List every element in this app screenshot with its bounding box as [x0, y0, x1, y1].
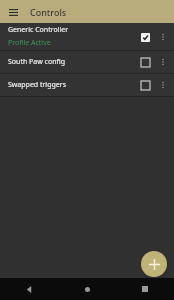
button[interactable]: Add profile	[141, 251, 167, 277]
button[interactable]: Disabled	[136, 76, 154, 94]
button[interactable]: More options	[156, 78, 170, 92]
button[interactable]: More options	[156, 30, 170, 44]
button[interactable]: Open navigation menu	[5, 4, 21, 20]
button[interactable]: Enabled	[136, 28, 154, 46]
button[interactable]: Home	[58, 278, 116, 300]
button[interactable]: Recent apps	[116, 278, 174, 300]
button[interactable]: More options	[156, 55, 170, 69]
button[interactable]: Generic Controller	[0, 23, 174, 50]
staticText: Generic Controller	[8, 25, 69, 35]
button[interactable]: Disabled	[136, 53, 154, 71]
staticText: South Paw config	[8, 57, 66, 67]
staticText: Profile Active	[8, 38, 51, 48]
button[interactable]: South Paw config	[0, 51, 174, 73]
staticText: Swapped triggers	[8, 80, 66, 90]
button[interactable]: Swapped triggers	[0, 74, 174, 96]
button[interactable]: Back	[0, 278, 58, 300]
staticText: Controls	[30, 6, 67, 18]
